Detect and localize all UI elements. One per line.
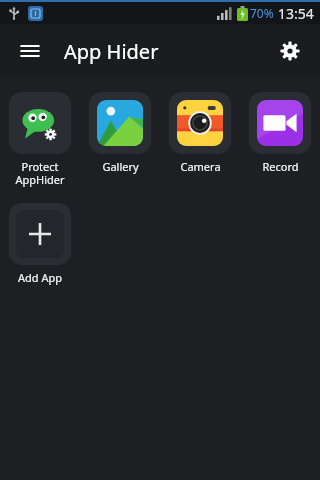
staticText: Record xyxy=(262,159,299,174)
button[interactable]: Menu xyxy=(10,31,50,71)
staticText: Gallery xyxy=(102,159,139,174)
button[interactable]: Camera xyxy=(160,88,240,178)
staticText: App Hider xyxy=(64,38,159,65)
staticText: Camera xyxy=(180,159,221,174)
button[interactable]: Record xyxy=(240,88,320,178)
staticText: 13:54 xyxy=(278,4,314,23)
staticText: Add App xyxy=(18,270,62,285)
button[interactable]: Add App xyxy=(0,199,80,289)
staticText: 70% xyxy=(250,5,274,21)
button[interactable]: Protect AppHider xyxy=(0,88,80,191)
button[interactable]: Gallery xyxy=(80,88,160,178)
staticText: Protect AppHider xyxy=(15,159,65,187)
button[interactable]: Settings xyxy=(270,31,310,71)
